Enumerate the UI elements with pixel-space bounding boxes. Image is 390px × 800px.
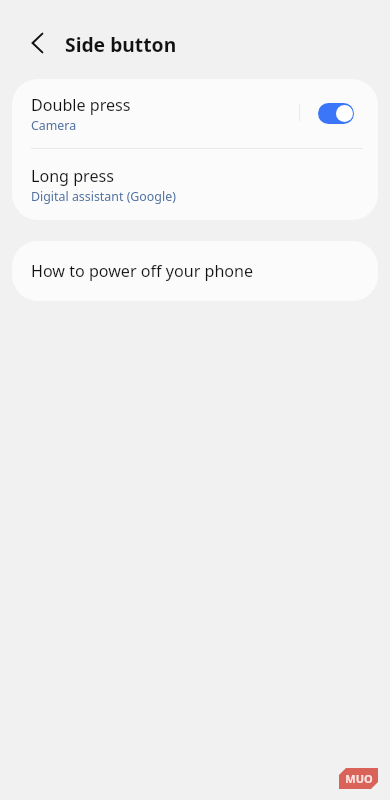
- button[interactable]: Navigate up: [18, 23, 58, 63]
- staticText: MUO: [345, 771, 373, 786]
- staticText: Long press: [31, 165, 114, 187]
- staticText: How to power off your phone: [31, 260, 254, 282]
- staticText: Camera: [31, 117, 77, 134]
- button[interactable]: Double press: [12, 79, 378, 149]
- staticText: Digital assistant (Google): [31, 188, 176, 205]
- button[interactable]: How to power off your phone: [12, 241, 378, 301]
- button[interactable]: Double press shortcut toggle: [318, 103, 354, 124]
- staticText: Double press: [31, 94, 131, 116]
- button[interactable]: Long press: [12, 149, 378, 220]
- staticText: Side button: [65, 31, 177, 57]
